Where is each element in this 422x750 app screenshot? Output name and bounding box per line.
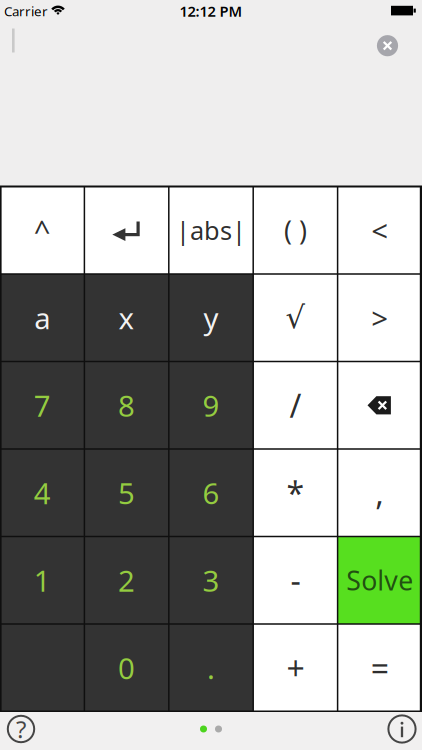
staticText: 0	[118, 648, 135, 687]
staticText: =	[371, 646, 389, 689]
staticText: x	[119, 298, 135, 337]
button[interactable]: 0	[84, 624, 169, 711]
button[interactable]: 8	[84, 361, 169, 449]
staticText: <	[371, 211, 388, 250]
staticText: 9	[202, 386, 219, 425]
button[interactable]: /	[253, 361, 338, 449]
staticText: 7	[34, 386, 51, 425]
button[interactable]: ,	[338, 449, 422, 536]
staticText: y	[203, 298, 218, 337]
button[interactable]: 5	[84, 449, 169, 536]
staticText: 1	[34, 561, 51, 600]
button[interactable]: .	[169, 624, 253, 711]
button[interactable]: Info	[387, 714, 417, 744]
button[interactable]: Page 1	[200, 725, 207, 732]
staticText: √	[285, 300, 305, 335]
staticText: 2	[118, 561, 135, 600]
staticText: .	[207, 648, 215, 687]
button[interactable]: Backspace	[338, 361, 422, 449]
staticText: /	[289, 384, 301, 426]
button[interactable]: -	[253, 536, 338, 624]
button[interactable]: 2	[84, 536, 169, 624]
button[interactable]: √	[253, 274, 338, 361]
button[interactable]: 3	[169, 536, 253, 624]
button[interactable]: <	[338, 186, 422, 274]
staticText: 4	[34, 473, 51, 512]
button[interactable]: +	[253, 624, 338, 711]
staticText: -	[290, 559, 300, 601]
staticText: ?	[16, 713, 26, 745]
button[interactable]: a	[0, 274, 84, 361]
staticText: +	[286, 646, 304, 689]
button[interactable]: key	[0, 624, 84, 711]
button[interactable]: Page 2	[215, 725, 222, 732]
button[interactable]: *	[253, 449, 338, 536]
staticText: 12:12 PM	[179, 1, 242, 21]
staticText: Solve	[346, 562, 413, 598]
staticText: >	[371, 298, 388, 337]
staticText: ( )	[284, 212, 307, 248]
button[interactable]: Return	[84, 186, 169, 274]
button[interactable]: 9	[169, 361, 253, 449]
button[interactable]: ( )	[253, 186, 338, 274]
staticText: ,	[375, 471, 384, 514]
staticText: 5	[118, 473, 135, 512]
staticText: ^	[34, 211, 51, 250]
button[interactable]: x	[84, 274, 169, 361]
staticText: |abs|	[176, 213, 246, 247]
button[interactable]: 6	[169, 449, 253, 536]
staticText: 8	[118, 386, 135, 425]
staticText: a	[34, 298, 50, 337]
staticText: *	[286, 471, 304, 514]
staticText: Carrier	[4, 2, 48, 20]
button[interactable]: Clear	[0, 0, 422, 750]
button[interactable]: Solve	[338, 536, 422, 624]
button[interactable]: y	[169, 274, 253, 361]
button[interactable]: ^	[0, 186, 84, 274]
button[interactable]: 1	[0, 536, 84, 624]
button[interactable]: |abs|	[169, 186, 253, 274]
button[interactable]: 7	[0, 361, 84, 449]
button[interactable]: >	[338, 274, 422, 361]
button[interactable]: 4	[0, 449, 84, 536]
button[interactable]: =	[338, 624, 422, 711]
button[interactable]: Help	[6, 714, 35, 743]
staticText: 6	[202, 473, 219, 512]
staticText: 3	[202, 561, 219, 600]
